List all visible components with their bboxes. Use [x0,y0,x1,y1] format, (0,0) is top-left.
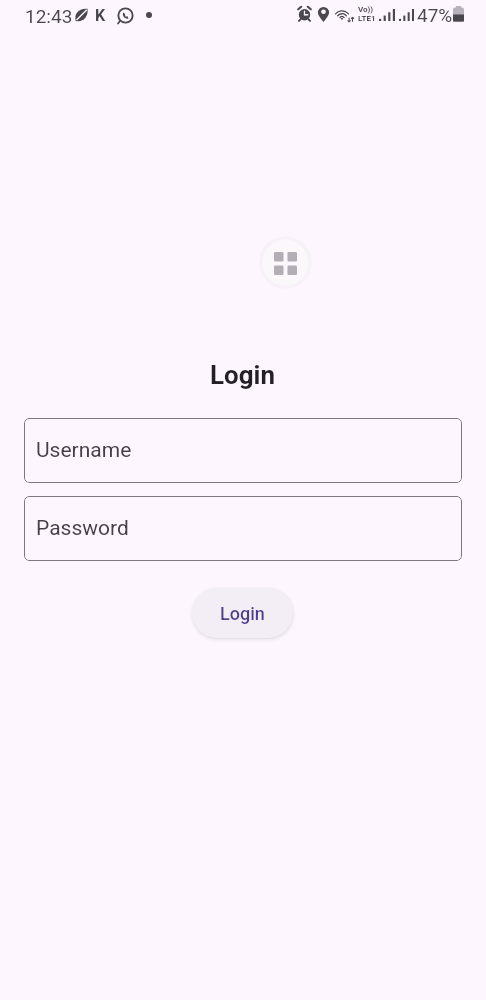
staticText: Vo)) [358,5,374,14]
staticText: LTE1 [358,14,376,23]
staticText: 12:43 [25,5,73,27]
button[interactable]: Username [24,418,462,483]
staticText: Password [36,516,129,541]
staticText: Username [36,438,132,463]
button[interactable]: Password [24,496,462,561]
staticText: Login [210,360,276,390]
button[interactable]: Login [192,588,293,638]
button[interactable]: App logo [259,236,312,289]
staticText: K [95,6,106,25]
staticText: Login [220,603,265,624]
staticText: 47% [417,4,453,26]
